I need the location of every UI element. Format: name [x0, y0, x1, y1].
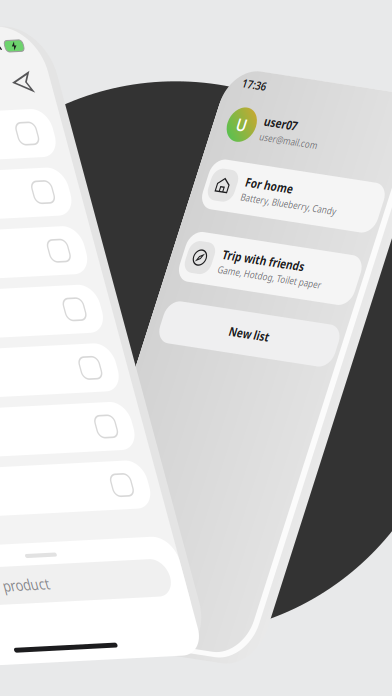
staticText: Game, Hotdog, Toilet paper	[98, 314, 307, 336]
button[interactable]	[0, 102, 378, 174]
button[interactable]	[0, 390, 378, 462]
button[interactable]: New list	[0, 386, 375, 456]
staticText: Trip with friends	[98, 287, 263, 313]
button[interactable]: Searth product	[0, 655, 392, 696]
staticText: user07	[97, 64, 163, 91]
staticText: U	[45, 71, 66, 108]
button[interactable]	[0, 462, 378, 534]
button[interactable]: For home	[0, 149, 375, 232]
button[interactable]: Trip with friends	[0, 270, 375, 353]
button[interactable]	[0, 318, 378, 390]
staticText: For home	[98, 166, 194, 192]
button[interactable]	[0, 534, 378, 606]
button[interactable]	[0, 174, 378, 246]
button[interactable]	[0, 246, 378, 318]
staticText: Battery, Blueberry, Candy	[98, 193, 290, 215]
